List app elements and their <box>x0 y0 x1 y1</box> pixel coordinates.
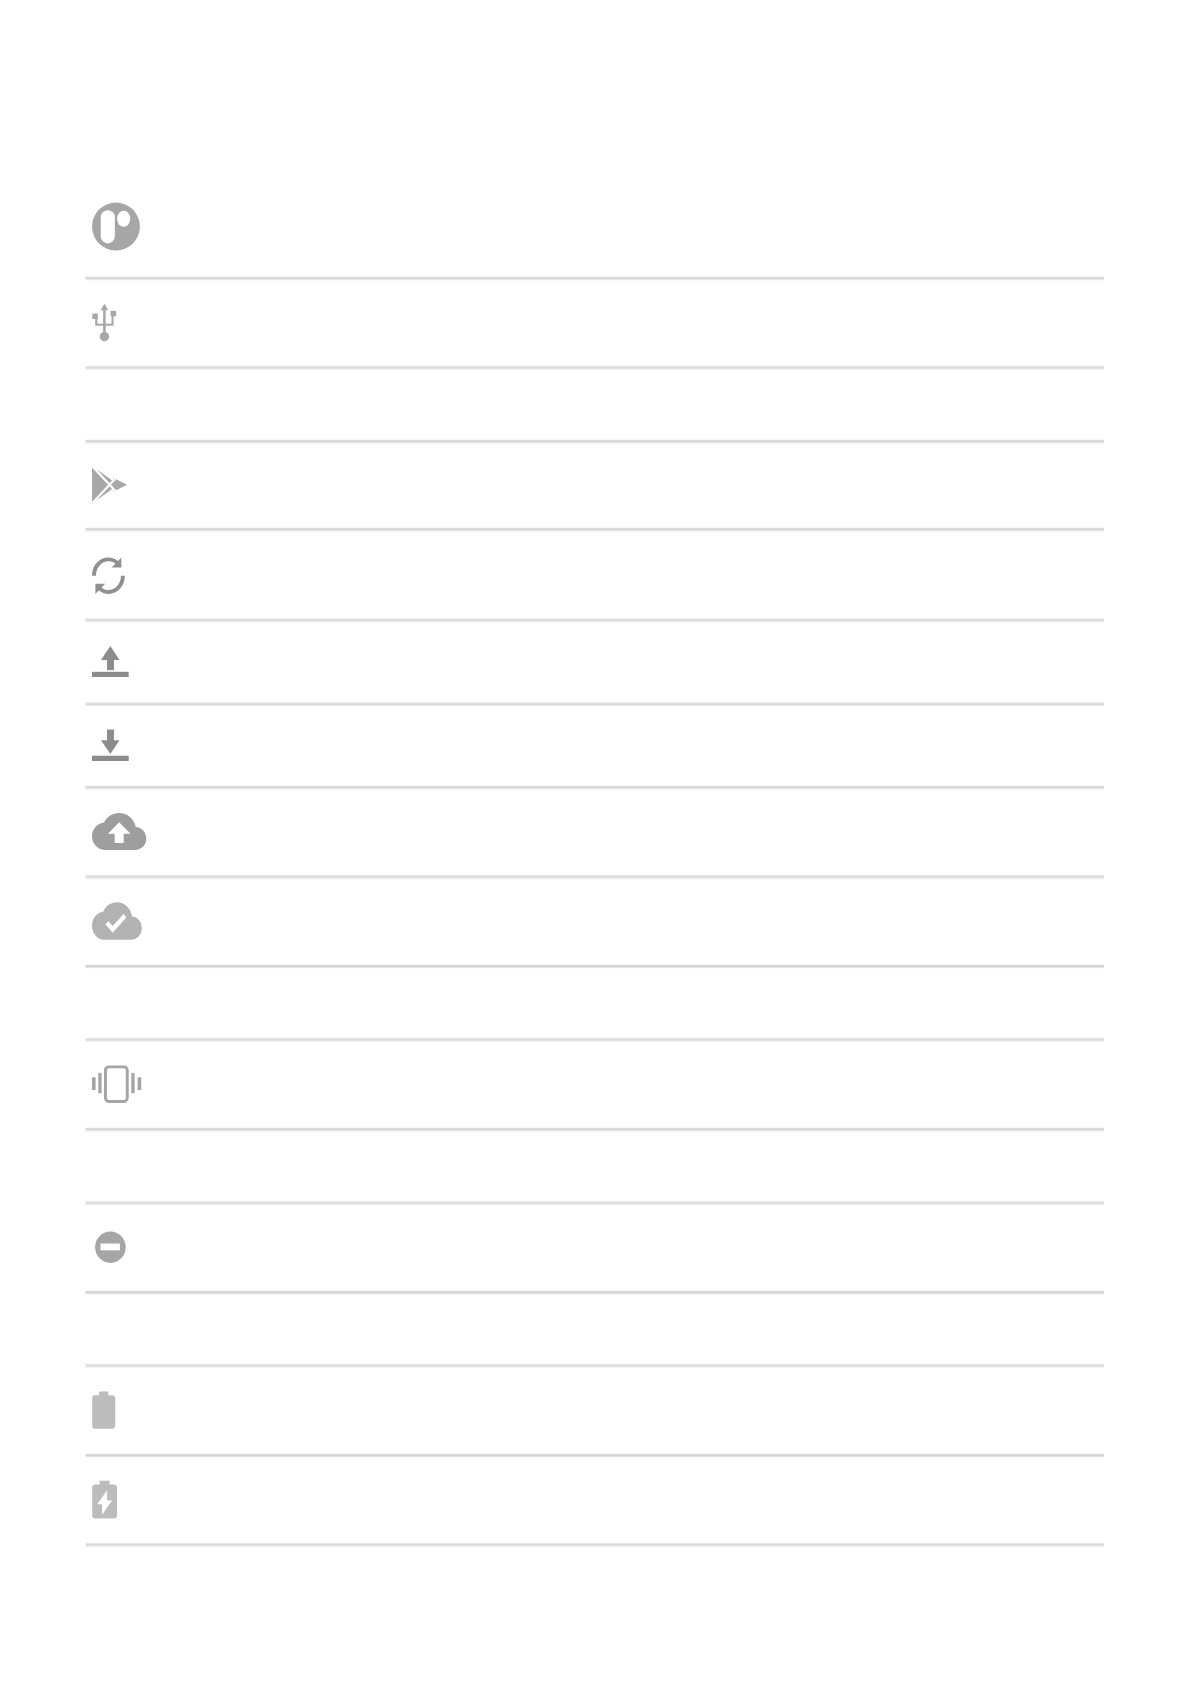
button[interactable]: Battery <box>0 1367 1191 1457</box>
button[interactable]: App logo <box>0 0 1191 278</box>
button[interactable]: Cloud upload <box>0 789 1191 878</box>
button[interactable]: Sync <box>0 530 1191 621</box>
button[interactable]: Cloud done <box>0 878 1191 968</box>
button[interactable]: Download <box>0 705 1191 789</box>
button[interactable]: List item <box>0 968 1191 1041</box>
button[interactable]: Google Play <box>0 442 1191 530</box>
button[interactable]: Battery charging <box>0 1457 1191 1546</box>
button[interactable]: List item <box>0 1131 1191 1204</box>
button[interactable]: USB <box>0 278 1191 368</box>
button[interactable]: Upload <box>0 621 1191 705</box>
button[interactable]: List item <box>0 1294 1191 1367</box>
button[interactable]: List item <box>0 368 1191 442</box>
button[interactable]: Do not disturb <box>0 1204 1191 1294</box>
button[interactable]: Vibration <box>0 1041 1191 1131</box>
